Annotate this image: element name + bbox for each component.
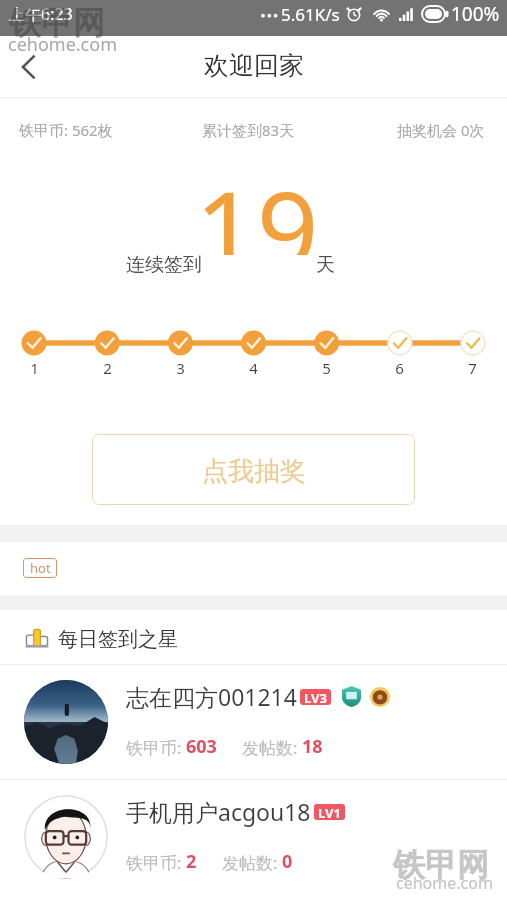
staticText: 5.61K/s: [281, 3, 340, 26]
staticText: 上午6:23: [9, 3, 73, 25]
staticText: 连续签到: [126, 253, 202, 277]
staticText: 0: [282, 849, 293, 874]
staticText: 发帖数:: [222, 851, 282, 874]
staticText: 铁甲币:: [126, 736, 186, 759]
staticText: LV3: [304, 689, 327, 705]
staticText: 2: [186, 849, 197, 874]
staticText: 铁甲币: 562枚: [19, 120, 113, 140]
staticText: 2: [103, 358, 112, 378]
staticText: LV1: [318, 804, 341, 820]
staticText: 欢迎回家: [204, 50, 304, 81]
staticText: 铁甲网: [393, 845, 489, 885]
button[interactable]: hot: [23, 558, 57, 578]
button[interactable]: 点我抽奖: [92, 434, 415, 505]
staticText: 18: [302, 734, 323, 759]
staticText: 发帖数:: [242, 736, 302, 759]
staticText: hot: [30, 559, 51, 577]
staticText: 抽奖机会 0次: [397, 120, 485, 140]
staticText: 603: [186, 734, 217, 759]
staticText: 7: [468, 358, 477, 378]
staticText: 铁甲网: [9, 3, 105, 43]
button[interactable]: Back: [0, 36, 58, 97]
staticText: 天: [316, 253, 335, 277]
staticText: 6: [395, 358, 404, 378]
staticText: cehome.com: [8, 32, 117, 57]
staticText: 铁甲币:: [126, 851, 186, 874]
staticText: 点我抽奖: [202, 455, 306, 488]
staticText: 1: [30, 358, 39, 378]
staticText: 志在四方001214: [126, 681, 297, 712]
staticText: 手机用户acgou18: [126, 796, 311, 827]
staticText: 每日签到之星: [58, 627, 178, 652]
staticText: 3: [176, 358, 185, 378]
button[interactable]: 志在四方001214: [0, 665, 507, 779]
staticText: 100%: [451, 1, 500, 27]
staticText: 5: [322, 358, 331, 378]
button[interactable]: 手机用户acgou18: [0, 780, 507, 894]
staticText: 4: [249, 358, 258, 378]
staticText: 19: [195, 155, 319, 255]
staticText: 累计签到83天: [202, 120, 295, 140]
staticText: cehome.com: [396, 872, 493, 894]
